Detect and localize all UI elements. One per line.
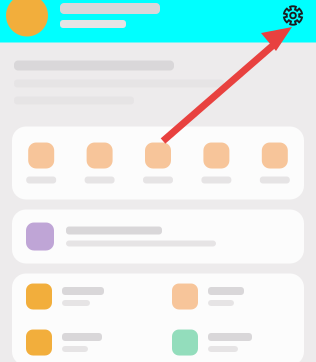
button[interactable]	[158, 273, 304, 319]
button[interactable]: Settings	[276, 0, 310, 30]
button[interactable]	[158, 319, 304, 362]
button[interactable]	[187, 126, 246, 199]
button[interactable]	[12, 319, 158, 362]
button[interactable]	[129, 126, 187, 199]
button[interactable]	[70, 126, 129, 199]
button[interactable]	[12, 209, 304, 263]
button[interactable]	[12, 273, 158, 319]
button[interactable]	[12, 126, 70, 199]
button[interactable]	[246, 126, 304, 199]
